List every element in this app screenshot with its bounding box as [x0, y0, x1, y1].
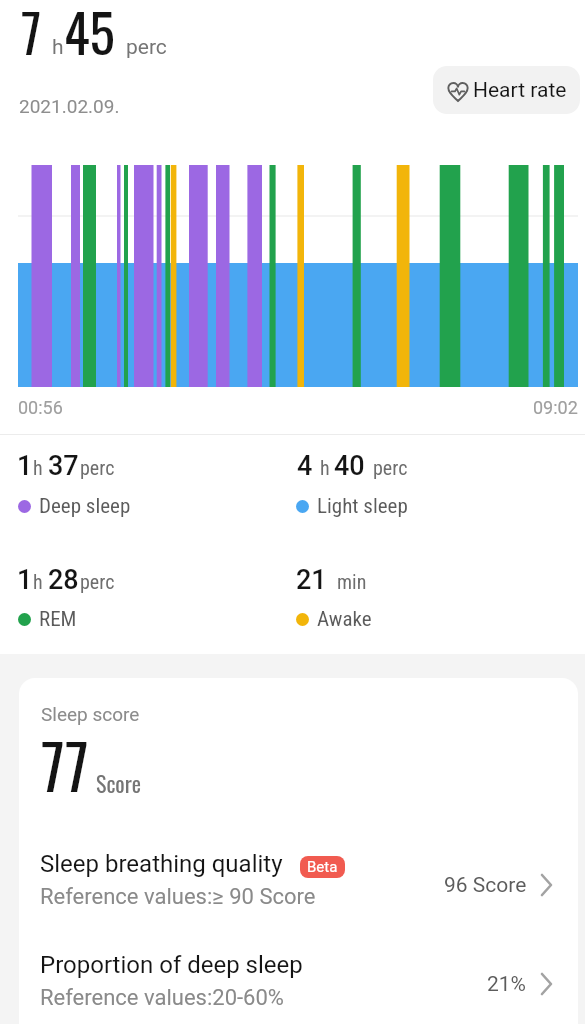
- button[interactable]: Heart rate: [433, 66, 580, 114]
- staticText: perc: [373, 456, 408, 479]
- staticText: 28: [48, 564, 79, 596]
- staticText: h: [33, 570, 43, 593]
- staticText: REM: [39, 607, 77, 632]
- staticText: 2021.02.09.: [19, 95, 120, 117]
- staticText: h: [52, 35, 64, 60]
- staticText: min: [337, 570, 367, 593]
- staticText: 21%: [487, 972, 526, 997]
- staticText: perc: [80, 570, 115, 593]
- staticText: 1: [17, 450, 33, 482]
- button[interactable]: Sleep breathing quality: [19, 836, 578, 936]
- button[interactable]: Proportion of deep sleep: [19, 936, 578, 1024]
- staticText: Score: [96, 767, 141, 800]
- staticText: Heart rate: [473, 78, 567, 103]
- staticText: Light sleep: [317, 494, 408, 519]
- staticText: 96 Score: [444, 873, 527, 898]
- staticText: Awake: [317, 607, 372, 632]
- staticText: 45: [64, 0, 115, 71]
- staticText: Reference values:20-60%: [40, 985, 284, 1011]
- staticText: Sleep breathing quality: [40, 850, 283, 878]
- staticText: 00:56: [18, 397, 63, 418]
- staticText: Beta: [307, 858, 338, 876]
- staticText: Reference values:≥ 90 Score: [40, 884, 316, 910]
- staticText: 7: [21, 0, 42, 71]
- staticText: 09:02: [533, 397, 578, 418]
- staticText: Proportion of deep sleep: [40, 951, 303, 979]
- staticText: 40: [334, 450, 365, 482]
- staticText: Deep sleep: [39, 494, 131, 519]
- staticText: 4: [297, 450, 313, 482]
- staticText: perc: [126, 35, 167, 60]
- staticText: h: [320, 456, 330, 479]
- staticText: 77: [41, 718, 89, 810]
- staticText: 37: [48, 450, 79, 482]
- staticText: 21: [296, 564, 327, 596]
- staticText: h: [33, 456, 43, 479]
- staticText: 1: [17, 564, 33, 596]
- staticText: perc: [80, 456, 115, 479]
- staticText: Sleep score: [41, 703, 140, 725]
